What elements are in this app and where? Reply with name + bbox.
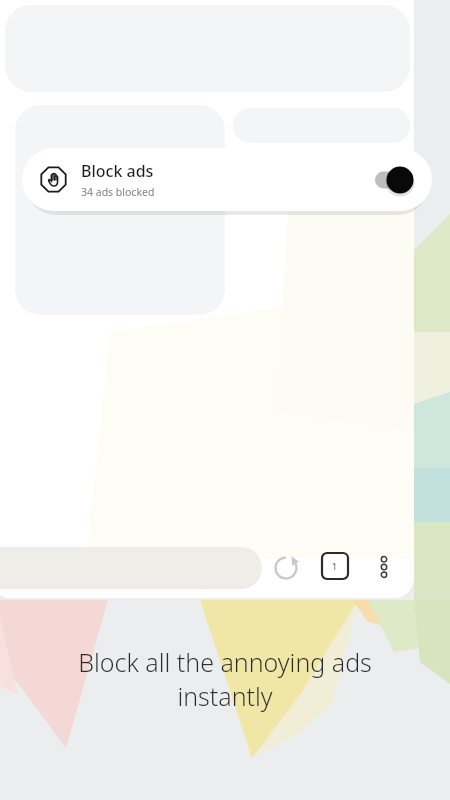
staticText: Block ads — [81, 160, 154, 182]
staticText: 34 ads blocked — [81, 185, 155, 199]
button[interactable]: Block ads toggle, on — [373, 166, 417, 194]
button[interactable]: Reload — [273, 555, 299, 581]
button[interactable]: More options — [372, 551, 396, 583]
staticText: Block all the annoying ads instantly — [22, 645, 428, 713]
button[interactable]: Tabs — [322, 553, 348, 579]
button[interactable]: Block ads — [22, 148, 432, 211]
staticText: 1 — [332, 560, 338, 572]
